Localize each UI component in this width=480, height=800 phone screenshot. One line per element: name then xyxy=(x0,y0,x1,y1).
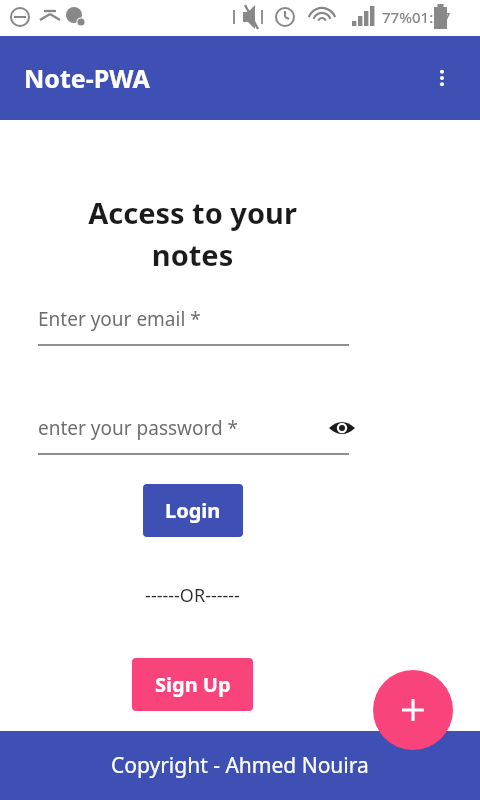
staticText: Sign Up xyxy=(155,671,231,698)
button[interactable]: Sign Up xyxy=(132,658,253,711)
staticText: 77% xyxy=(382,7,412,27)
staticText: ------OR------ xyxy=(13,583,372,608)
staticText: Copyright - Ahmed Nouira xyxy=(111,751,369,780)
button[interactable]: More options xyxy=(422,58,462,98)
button[interactable]: Enter your email * xyxy=(38,306,349,346)
staticText: Enter your email * xyxy=(38,306,201,332)
staticText: enter your password * xyxy=(38,415,239,441)
button[interactable]: Login xyxy=(143,484,243,537)
staticText: Login xyxy=(165,497,221,524)
staticText: 01:37 xyxy=(412,7,451,27)
button[interactable]: Add note xyxy=(373,670,453,750)
staticText: Note-PWA xyxy=(24,61,150,95)
button[interactable]: enter your password * xyxy=(38,415,349,455)
staticText: Access to your notes xyxy=(29,193,356,274)
button[interactable]: Show password xyxy=(320,406,364,450)
